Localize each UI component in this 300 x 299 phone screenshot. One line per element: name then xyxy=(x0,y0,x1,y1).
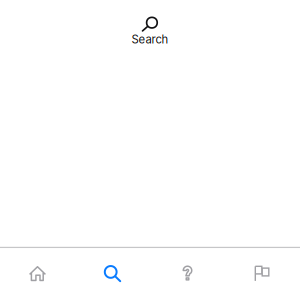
staticText: Search xyxy=(131,32,168,46)
button[interactable]: Home xyxy=(0,248,75,299)
button[interactable]: Search xyxy=(75,248,150,299)
button[interactable]: Help xyxy=(150,248,225,299)
button[interactable]: Flags xyxy=(225,248,300,299)
